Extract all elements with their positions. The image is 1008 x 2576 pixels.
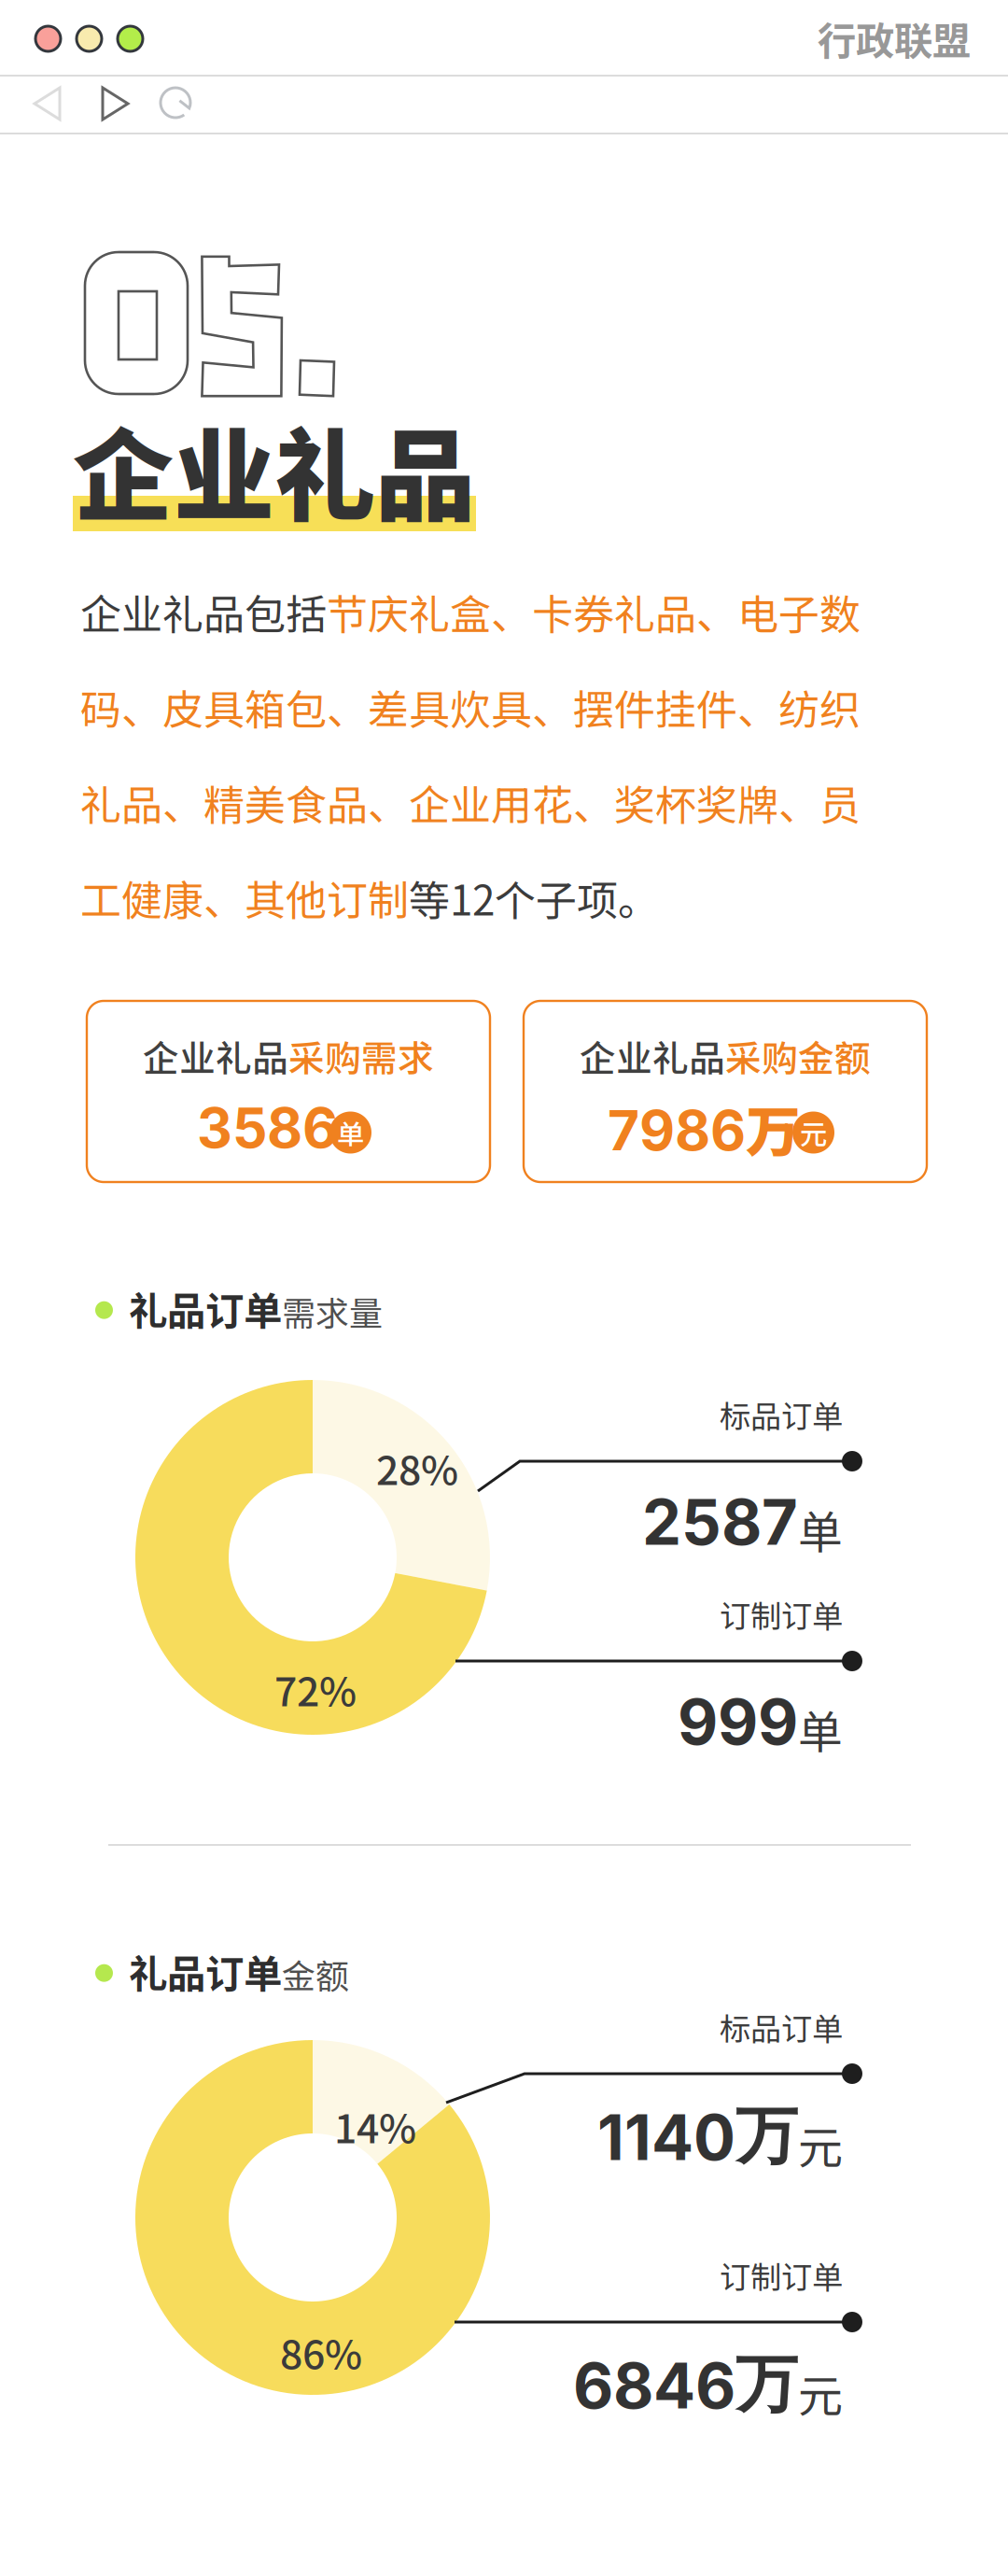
staticText: 2587单	[642, 1485, 843, 1561]
staticText: 14%	[334, 2097, 416, 2155]
staticText: 企业礼品包括节庆礼盒、卡券礼品、电子数码、皮具箱包、差具炊具、摆件挂件、纺织礼品…	[80, 583, 861, 927]
staticText: 礼品订单金额	[129, 1944, 349, 1998]
staticText: 企业礼品	[73, 396, 476, 542]
button[interactable]: Forward	[97, 85, 133, 122]
staticText: 订制订单	[720, 1592, 843, 1637]
staticText: 28%	[376, 1439, 458, 1496]
button[interactable]: 企业礼品采购需求	[87, 1001, 490, 1182]
staticText: 单	[337, 1113, 364, 1152]
staticText: 订制订单	[720, 2253, 843, 2298]
staticText: 7986万	[608, 1089, 801, 1167]
staticText: 86%	[280, 2323, 362, 2381]
staticText: 999单	[678, 1685, 843, 1761]
staticText: 72%	[274, 1660, 357, 1718]
staticText: 元	[800, 1113, 827, 1152]
staticText: 礼品订单需求量	[129, 1281, 383, 1336]
staticText: 企业礼品采购金额	[580, 1030, 871, 1081]
button[interactable]: 企业礼品采购金额	[524, 1001, 927, 1182]
staticText: 企业礼品采购需求	[143, 1030, 434, 1081]
staticText: 标品订单	[720, 2004, 843, 2049]
button[interactable]: Back	[32, 85, 67, 122]
staticText: 6846万元	[573, 2346, 843, 2425]
button[interactable]: Reload	[157, 83, 196, 124]
staticText: 1140万元	[597, 2098, 843, 2176]
staticText: 3586	[197, 1096, 338, 1160]
staticText: 标品订单	[720, 1392, 843, 1437]
staticText: 行政联盟	[818, 10, 971, 66]
